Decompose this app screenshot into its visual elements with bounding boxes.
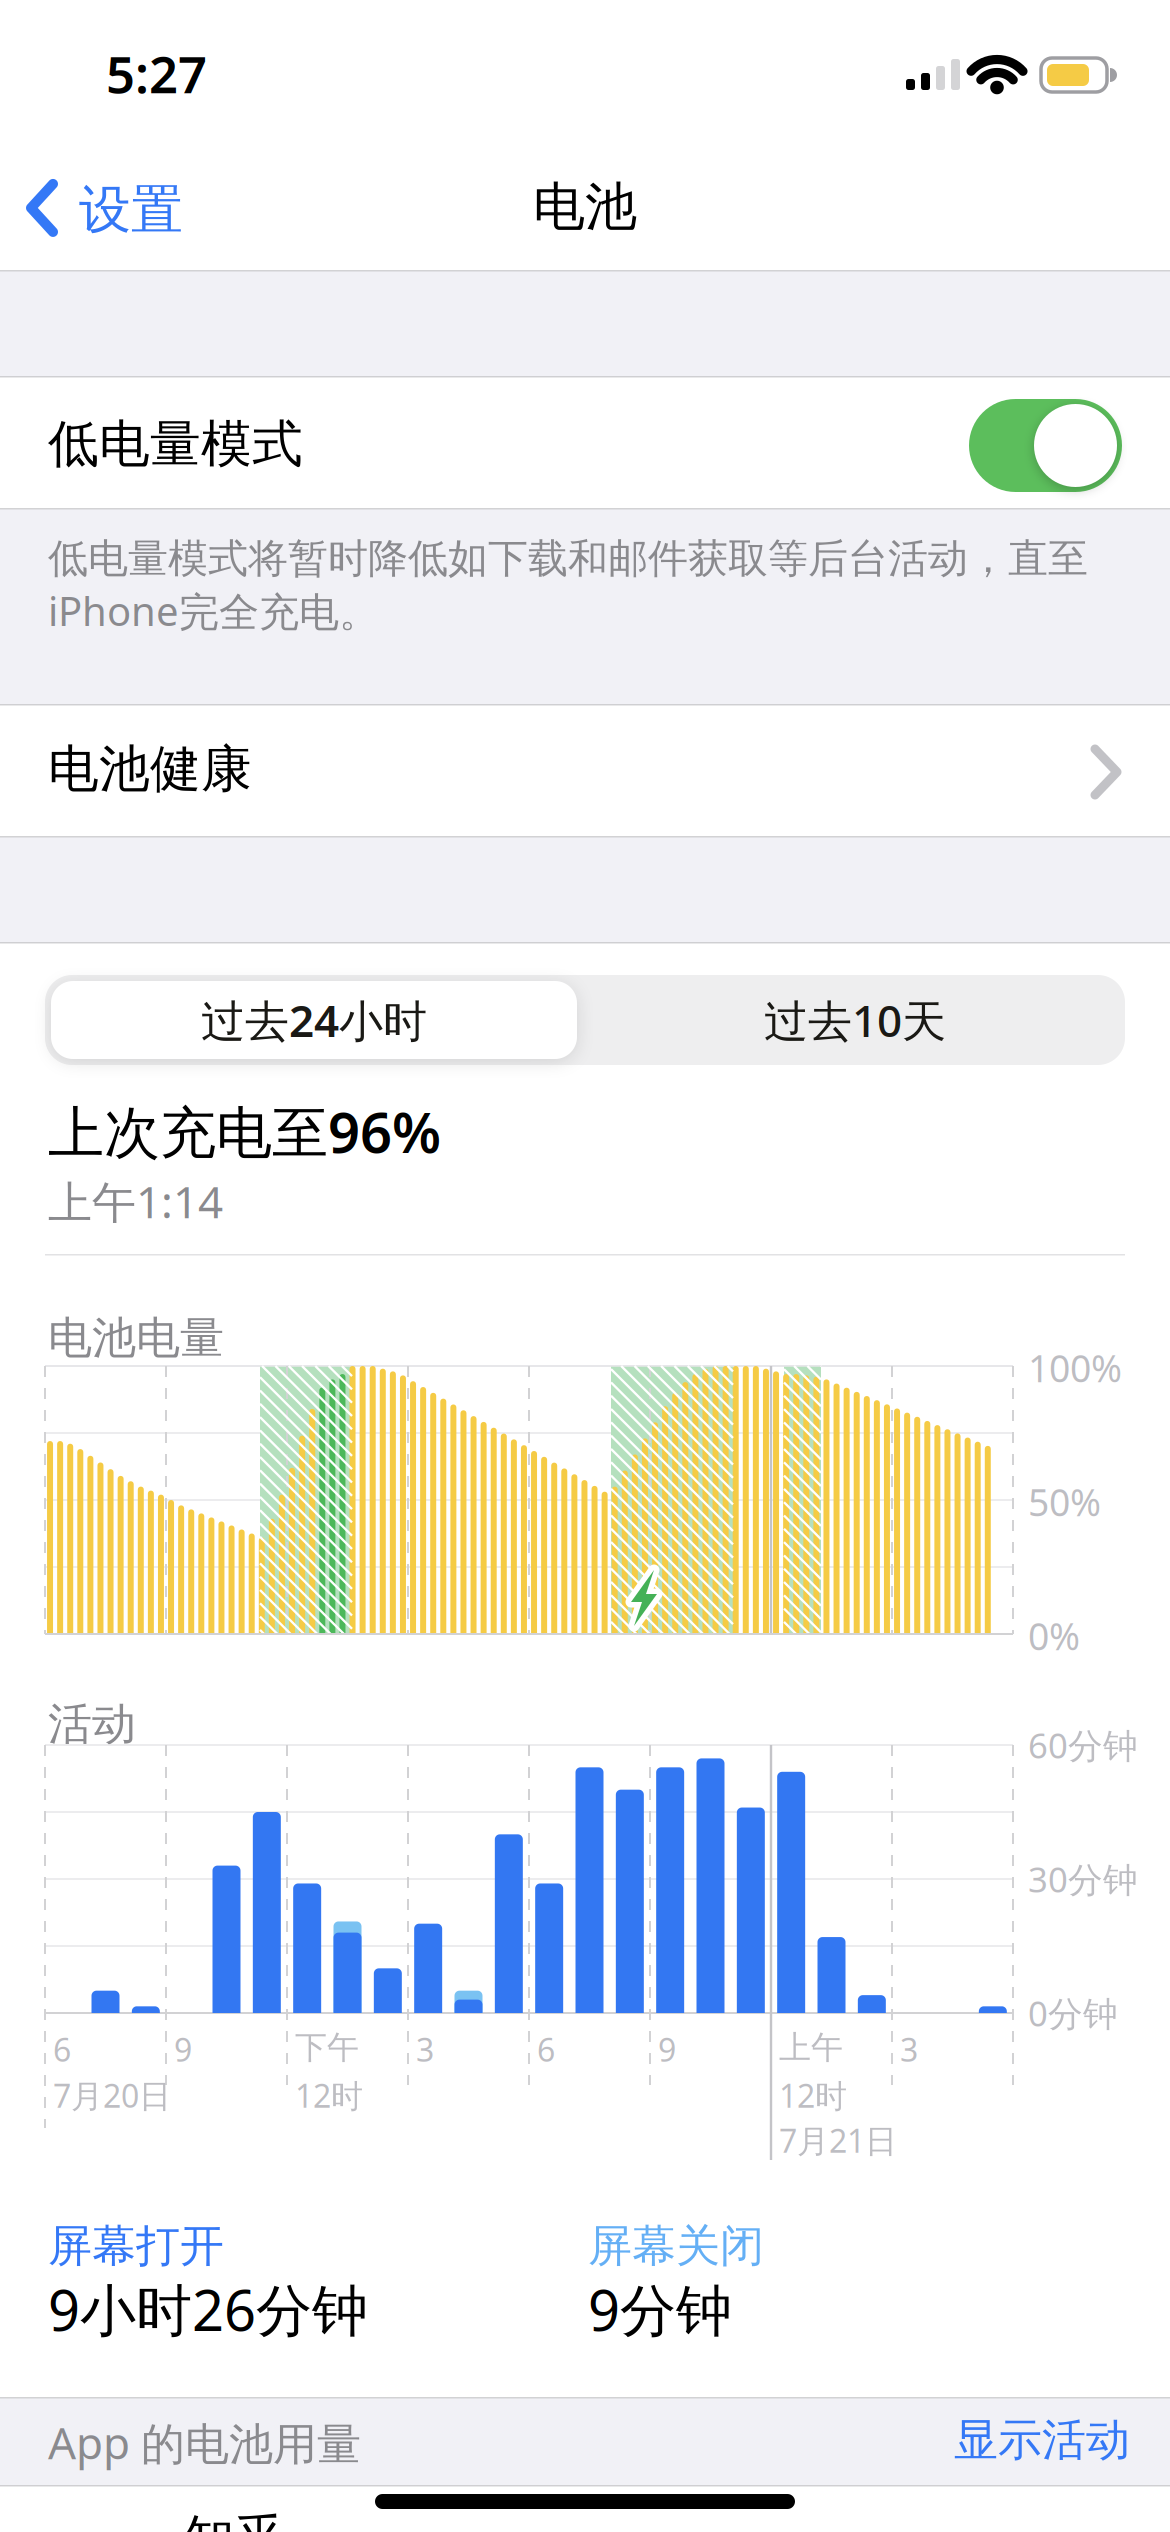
staticText: 7月21日 [779,2119,897,2161]
staticText: 5:27 [106,40,207,107]
staticText: 低电量模式将暂时降低如下载和邮件获取等后台活动，直至 [48,534,1088,583]
staticText: 3 [900,2028,918,2070]
staticText: 活动 [48,1697,136,1751]
staticText: 7月20日 [53,2074,171,2116]
staticText: 电池健康 [48,738,252,800]
staticText: 100% [1028,1343,1122,1393]
staticText: 上次充电至96% [48,1094,441,1168]
staticText: 屏幕打开 [48,2219,224,2273]
staticText: 30分钟 [1028,1856,1138,1902]
staticText: 9 [658,2028,676,2070]
staticText: 9 [174,2028,192,2070]
staticText: 电池 [533,175,637,239]
staticText: 上午1:14 [48,1172,223,1230]
staticText: 下午 [295,2028,359,2067]
staticText: 12时 [779,2074,847,2116]
staticText: 9小时26分钟 [48,2272,368,2346]
staticText: 显示活动 [954,2413,1130,2467]
staticText: App 的电池用量 [48,2413,361,2472]
staticText: 屏幕关闭 [588,2219,764,2273]
button[interactable]: 过去10天 [615,981,1095,1059]
staticText: 50% [1028,1477,1101,1527]
staticText: 6 [537,2028,555,2070]
button[interactable]: 返回设置 [27,178,183,242]
button[interactable]: 低电量模式 [969,399,1122,492]
staticText: 上午 [779,2028,843,2067]
staticText: 9分钟 [588,2272,732,2346]
staticText: 电池电量 [48,1311,224,1365]
button[interactable]: 知乎 [0,2486,1170,2532]
staticText: 低电量模式 [48,413,303,475]
staticText: 12时 [295,2074,363,2116]
staticText: iPhone完全充电。 [48,584,379,637]
button[interactable]: 显示活动 [830,2413,1130,2467]
staticText: 0% [1028,1611,1080,1661]
staticText: 3 [416,2028,434,2070]
staticText: 设置 [79,178,183,242]
staticText: 过去24小时 [201,991,427,1049]
staticText: 60分钟 [1028,1722,1138,1768]
button[interactable]: 过去24小时 [51,981,577,1059]
button[interactable]: 电池健康 [0,706,1170,837]
staticText: 知乎 [184,2508,286,2532]
staticText: 过去10天 [764,991,946,1049]
staticText: 0分钟 [1028,1990,1118,2036]
staticText: 6 [53,2028,71,2070]
